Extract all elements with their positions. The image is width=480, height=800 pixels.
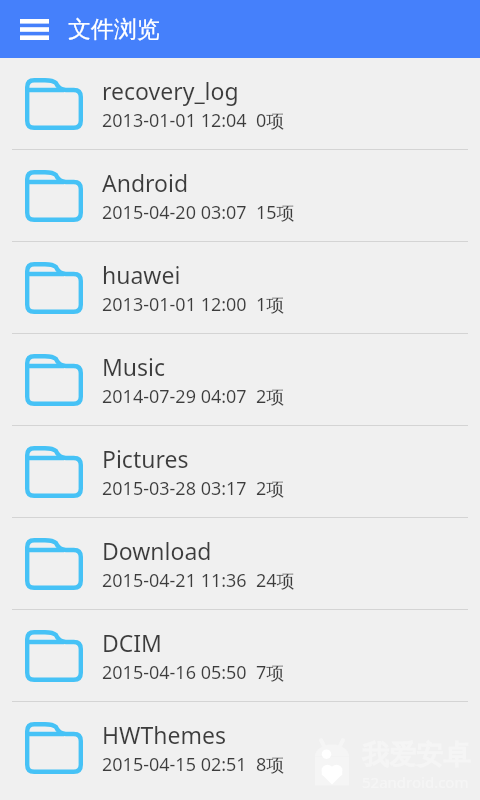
button[interactable]: Pictures: [0, 426, 480, 517]
staticText: 文件浏览: [68, 15, 160, 44]
button[interactable]: recovery_log: [0, 58, 480, 149]
staticText: 1项: [256, 292, 285, 317]
staticText: DCIM: [102, 627, 162, 658]
staticText: 2015-04-15 02:51: [102, 752, 247, 777]
staticText: Music: [102, 351, 166, 382]
staticText: 0项: [256, 108, 285, 133]
button[interactable]: Open navigation menu: [8, 3, 60, 55]
button[interactable]: DCIM: [0, 610, 480, 701]
staticText: 2013-01-01 12:00: [102, 292, 247, 317]
button[interactable]: HWThemes: [0, 702, 480, 793]
staticText: huawei: [102, 259, 181, 290]
button[interactable]: Android: [0, 150, 480, 241]
staticText: recovery_log: [102, 75, 239, 106]
staticText: 2015-03-28 03:17: [102, 476, 247, 501]
staticText: HWThemes: [102, 719, 226, 750]
staticText: 15项: [256, 200, 295, 225]
staticText: 2014-07-29 04:07: [102, 384, 247, 409]
staticText: 2015-04-20 03:07: [102, 200, 247, 225]
staticText: Android: [102, 167, 189, 198]
staticText: 2项: [256, 384, 285, 409]
button[interactable]: huawei: [0, 242, 480, 333]
staticText: 24项: [256, 568, 295, 593]
staticText: 2013-01-01 12:04: [102, 108, 247, 133]
staticText: 8项: [256, 752, 285, 777]
button[interactable]: Music: [0, 334, 480, 425]
staticText: 2015-04-16 05:50: [102, 660, 247, 685]
staticText: 2项: [256, 476, 285, 501]
staticText: 7项: [256, 660, 285, 685]
staticText: 2015-04-21 11:36: [102, 568, 247, 593]
button[interactable]: Download: [0, 518, 480, 609]
staticText: Download: [102, 535, 212, 566]
staticText: Pictures: [102, 443, 189, 474]
